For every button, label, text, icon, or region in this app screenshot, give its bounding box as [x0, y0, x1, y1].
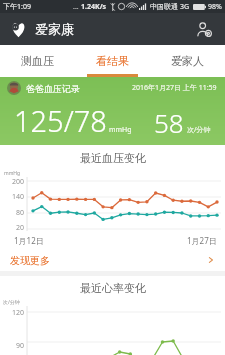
- staticText: 下午1:09: [3, 2, 31, 12]
- button[interactable]: Account settings: [193, 18, 215, 40]
- staticText: 次/分钟: [3, 299, 20, 306]
- button[interactable]: 爱家人: [150, 45, 225, 77]
- staticText: 1.24K/s: [81, 2, 107, 12]
- staticText: mmHg: [109, 125, 132, 135]
- staticText: 中国联通: [150, 2, 178, 11]
- button[interactable]: 爸爸血压记录: [0, 77, 225, 145]
- staticText: 1月27日: [187, 235, 217, 246]
- staticText: 98%: [208, 2, 222, 12]
- staticText: 爱家人: [171, 54, 204, 68]
- staticText: 3G: [180, 2, 190, 12]
- staticText: 测血压: [21, 54, 54, 68]
- staticText: 发现更多: [10, 254, 50, 267]
- button[interactable]: 测血压: [0, 45, 75, 77]
- staticText: 90: [1, 341, 24, 351]
- staticText: 次/分钟: [187, 125, 211, 135]
- staticText: 58: [154, 105, 184, 140]
- staticText: 2016年1月27日 上午 11:59: [132, 83, 217, 93]
- staticText: 80: [2, 208, 24, 218]
- staticText: 爸爸血压记录: [26, 83, 80, 94]
- staticText: 最近血压变化: [80, 151, 146, 165]
- staticText: 看结果: [96, 54, 129, 68]
- staticText: 爱家康: [35, 21, 74, 37]
- staticText: 1月12日: [14, 235, 44, 246]
- button[interactable]: 发现更多: [0, 249, 225, 271]
- staticText: ...: [73, 2, 79, 12]
- staticText: 最近心率变化: [80, 281, 146, 295]
- staticText: mmHg: [4, 170, 21, 177]
- staticText: 120: [1, 308, 24, 318]
- staticText: 20: [2, 223, 24, 233]
- staticText: 140: [2, 192, 24, 202]
- staticText: 200: [2, 177, 24, 187]
- button[interactable]: 看结果: [75, 45, 150, 77]
- staticText: 125/78: [14, 101, 107, 140]
